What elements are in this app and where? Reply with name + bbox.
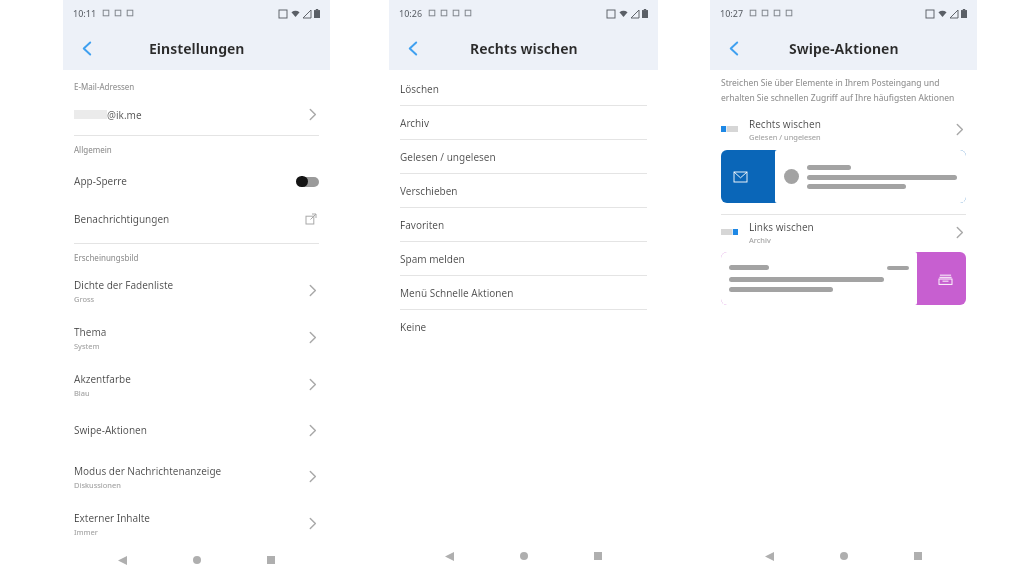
button[interactable]: App-Sperre — [63, 162, 330, 200]
staticText: Gelesen / ungelesen — [400, 150, 496, 164]
staticText: Keine — [400, 320, 427, 334]
button[interactable]: Übersicht — [583, 541, 613, 571]
staticText: Rechts wischen — [749, 117, 821, 131]
button[interactable]: Benachrichtigungen — [63, 200, 330, 238]
button[interactable]: Startseite — [509, 541, 539, 571]
button[interactable]: Zurück — [71, 32, 103, 64]
staticText: Thema — [74, 325, 107, 339]
button[interactable]: Keine — [389, 310, 658, 343]
button[interactable]: Löschen — [389, 72, 658, 105]
button[interactable]: @ik.me — [63, 99, 330, 130]
button[interactable]: Zurück — [107, 545, 137, 575]
staticText: Gross — [74, 294, 95, 304]
staticText: Externer Inhalte — [74, 511, 150, 525]
staticText: System — [74, 341, 100, 351]
button[interactable]: Spam melden — [389, 242, 658, 275]
button[interactable]: Modus der Nachrichtenanzeige — [63, 456, 330, 497]
button[interactable]: Zurück — [754, 541, 784, 571]
staticText: Swipe-Aktionen — [789, 39, 899, 58]
staticText: Allgemein — [74, 144, 112, 155]
button[interactable]: Menü Schnelle Aktionen — [389, 276, 658, 309]
button[interactable]: Übersicht — [903, 541, 933, 571]
staticText: 10:11 — [73, 7, 97, 19]
staticText: Streichen Sie über Elemente in Ihrem Pos… — [721, 77, 940, 89]
staticText: Menü Schnelle Aktionen — [400, 286, 514, 300]
button[interactable]: Thema — [63, 317, 330, 358]
staticText: Erscheinungsbild — [74, 252, 139, 263]
staticText: Immer — [74, 527, 98, 537]
staticText: App-Sperre — [74, 174, 127, 188]
staticText: Dichte der Fadenliste — [74, 278, 174, 292]
button[interactable]: App-Sperre umschalten — [296, 176, 319, 187]
staticText: @ik.me — [107, 108, 142, 122]
staticText: Archiv — [749, 235, 771, 245]
button[interactable]: Dichte der Fadenliste — [63, 270, 330, 311]
staticText: Modus der Nachrichtenanzeige — [74, 464, 222, 478]
staticText: erhalten Sie schnellen Zugriff auf Ihre … — [721, 92, 955, 104]
button[interactable]: Startseite — [182, 545, 212, 575]
staticText: Swipe-Aktionen — [74, 423, 147, 437]
staticText: Benachrichtigungen — [74, 212, 170, 226]
staticText: Gelesen / ungelesen — [749, 132, 821, 142]
staticText: Diskussionen — [74, 480, 121, 490]
button[interactable]: Öffnen — [303, 211, 319, 227]
button[interactable]: Akzentfarbe — [63, 364, 330, 405]
staticText: Löschen — [400, 82, 439, 96]
staticText: Akzentfarbe — [74, 372, 131, 386]
button[interactable]: Externer Inhalte — [63, 503, 330, 544]
button[interactable]: Archiv — [389, 106, 658, 139]
staticText: Blau — [74, 388, 90, 398]
button[interactable]: Gelesen / ungelesen — [389, 140, 658, 173]
button[interactable]: Zurück — [434, 541, 464, 571]
staticText: Archiv — [400, 116, 429, 130]
button[interactable]: Startseite — [829, 541, 859, 571]
staticText: Spam melden — [400, 252, 465, 266]
button[interactable]: Verschieben — [389, 174, 658, 207]
staticText: 10:27 — [720, 7, 744, 19]
button[interactable]: Zurück — [718, 32, 750, 64]
button[interactable]: Swipe-Aktionen — [63, 411, 330, 449]
staticText: Verschieben — [400, 184, 458, 198]
button[interactable]: Links wischen — [710, 215, 977, 249]
button[interactable]: Rechts wischen — [710, 112, 977, 146]
button[interactable]: Übersicht — [256, 545, 286, 575]
button[interactable]: Zurück — [397, 32, 429, 64]
staticText: Favoriten — [400, 218, 445, 232]
staticText: Links wischen — [749, 220, 814, 234]
staticText: Rechts wischen — [470, 39, 578, 58]
staticText: E-Mail-Adressen — [74, 81, 135, 92]
staticText: 10:26 — [399, 7, 423, 19]
staticText: Einstellungen — [149, 39, 245, 58]
button[interactable]: Favoriten — [389, 208, 658, 241]
